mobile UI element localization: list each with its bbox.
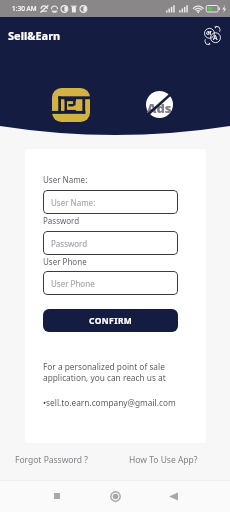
staticText: User Phone	[43, 256, 87, 267]
button[interactable]: Back	[162, 485, 184, 507]
staticText: Ads	[147, 99, 172, 117]
button[interactable]: Recents	[46, 485, 68, 507]
staticText: Sell&Earn	[8, 28, 61, 43]
staticText: Password	[43, 215, 80, 226]
staticText: A	[213, 33, 218, 43]
staticText: User Phone	[51, 278, 95, 289]
staticText: अ	[206, 28, 212, 38]
staticText: 1:30 AM	[12, 4, 37, 13]
button[interactable]: CONFIRM	[43, 309, 178, 332]
button[interactable]: How To Use App?	[125, 450, 202, 470]
staticText: •sell.to.earn.company@gmail.com	[43, 397, 176, 408]
button[interactable]: Forgot Password ?	[11, 450, 92, 470]
staticText: For a personalized point of sale applica…	[43, 361, 166, 384]
staticText: CONFIRM	[89, 315, 133, 327]
staticText: Password	[51, 238, 88, 249]
button[interactable]: Translate	[200, 23, 224, 47]
staticText: How To Use App?	[129, 454, 198, 466]
button[interactable]: Home	[104, 485, 126, 507]
button[interactable]: User Phone	[43, 271, 178, 295]
staticText: User Name:	[51, 197, 96, 208]
button[interactable]: User Name:	[43, 190, 178, 214]
staticText: Forgot Password ?	[15, 454, 88, 466]
staticText: User Name:	[43, 174, 88, 185]
button[interactable]: Password	[43, 231, 178, 255]
